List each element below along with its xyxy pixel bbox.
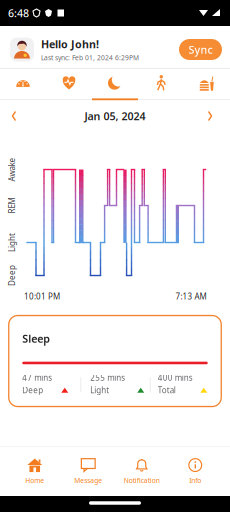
button[interactable] — [0, 69, 46, 98]
button[interactable] — [8, 107, 26, 125]
staticText: Hello John! — [41, 37, 99, 51]
staticText: Last sync: Feb 01, 2024 6:29PM — [41, 53, 139, 62]
staticText: Info — [189, 476, 201, 485]
button[interactable]: Home — [8, 449, 61, 493]
staticText: REM — [4, 200, 20, 211]
button[interactable] — [204, 107, 222, 125]
button[interactable]: Message — [61, 449, 115, 493]
staticText: Home — [25, 476, 44, 485]
staticText: 7:13 AM — [175, 291, 206, 302]
staticText: Deep — [22, 385, 43, 395]
staticText: 47 mins — [22, 372, 52, 383]
button[interactable] — [184, 69, 230, 98]
button[interactable] — [92, 69, 138, 98]
button[interactable]: Info — [168, 449, 222, 493]
button[interactable] — [46, 69, 92, 98]
staticText: Light — [2, 237, 21, 248]
staticText: 10:01 PM — [24, 291, 60, 302]
staticText: Sleep — [22, 331, 50, 346]
staticText: Light — [90, 385, 109, 395]
button[interactable]: Sync — [179, 39, 222, 60]
staticText: Jan 05, 2024 — [84, 109, 145, 123]
staticText: 255 mins — [90, 372, 125, 383]
button[interactable]: Notification — [115, 449, 168, 493]
staticText: Sync — [188, 42, 212, 57]
staticText: Notification — [124, 476, 160, 485]
button[interactable] — [138, 69, 184, 98]
staticText: 6:48 — [8, 6, 29, 20]
staticText: Awake — [0, 164, 24, 175]
staticText: Total — [158, 385, 176, 395]
staticText: Deep — [1, 270, 22, 281]
staticText: Message — [74, 476, 102, 485]
staticText: 400 mins — [158, 372, 193, 383]
